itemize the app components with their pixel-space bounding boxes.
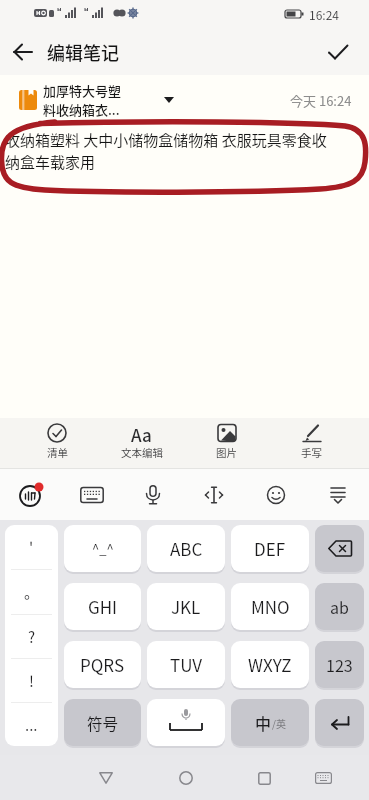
staticText: JKL	[171, 594, 201, 619]
staticText: Aa	[131, 422, 152, 444]
staticText: ab	[330, 595, 349, 618]
button[interactable]: TUV	[147, 641, 225, 688]
button[interactable]: '	[5, 525, 58, 569]
staticText: DEF	[254, 536, 286, 561]
staticText: 收纳箱塑料 大中小储物盒储物箱 衣服玩具零食收 纳盒车载家用	[5, 129, 327, 173]
button[interactable]: ABC	[147, 525, 225, 572]
button[interactable]	[0, 28, 47, 75]
button[interactable]	[315, 525, 364, 572]
button[interactable]	[147, 699, 225, 746]
staticText: 今天 16:24	[290, 91, 352, 110]
staticText: 加厚特大号塑	[43, 81, 122, 100]
staticText: MNO	[251, 594, 290, 619]
button[interactable]: 123	[315, 641, 364, 688]
button[interactable]: ...	[5, 703, 58, 746]
staticText: '	[29, 536, 34, 558]
staticText: 手写	[301, 445, 322, 460]
button[interactable]: 清单	[15, 418, 99, 468]
button[interactable]: PQRS	[64, 641, 141, 688]
button[interactable]: JKL	[147, 583, 225, 630]
button[interactable]: 加厚特大号塑	[19, 80, 352, 120]
button[interactable]: 。	[5, 570, 58, 614]
staticText: ABC	[170, 536, 203, 561]
button[interactable]	[86, 758, 126, 798]
button[interactable]	[307, 28, 369, 75]
button[interactable]: ?	[5, 615, 58, 658]
staticText: /英	[272, 716, 286, 730]
staticText: 16:24	[309, 6, 339, 23]
staticText: 清单	[47, 445, 68, 460]
button[interactable]	[315, 699, 364, 746]
button[interactable]: 中	[231, 699, 309, 746]
button[interactable]: 图片	[184, 418, 269, 468]
button[interactable]	[307, 469, 369, 520]
button[interactable]: Aa	[99, 418, 184, 468]
staticText: TUV	[170, 652, 203, 677]
staticText: 符号	[87, 712, 119, 734]
staticText: 编辑笔记	[47, 39, 119, 65]
staticText: 文本编辑	[121, 445, 163, 460]
button[interactable]: DEF	[231, 525, 309, 572]
button[interactable]	[183, 469, 245, 520]
button[interactable]: ^_^	[64, 525, 141, 572]
staticText: !	[29, 670, 34, 692]
button[interactable]: ab	[315, 583, 364, 630]
staticText: GHI	[88, 594, 118, 619]
button[interactable]: !	[5, 659, 58, 702]
button[interactable]	[245, 469, 307, 520]
staticText: WXYZ	[248, 652, 292, 677]
staticText: 图片	[216, 445, 237, 460]
button[interactable]	[244, 758, 284, 798]
button[interactable]	[166, 758, 206, 798]
button[interactable]	[303, 758, 343, 798]
staticText: ...	[25, 714, 38, 736]
button[interactable]: 符号	[64, 699, 141, 746]
staticText: ?	[28, 626, 36, 648]
staticText: 。	[24, 581, 40, 603]
button[interactable]: GHI	[64, 583, 141, 630]
staticText: PQRS	[80, 652, 125, 677]
button[interactable]: MNO	[231, 583, 309, 630]
button[interactable]: WXYZ	[231, 641, 309, 688]
button[interactable]	[122, 469, 183, 520]
staticText: 中	[255, 711, 272, 734]
button[interactable]	[61, 469, 122, 520]
button[interactable]: 手写	[269, 418, 354, 468]
button[interactable]	[0, 469, 61, 520]
staticText: ^_^	[92, 539, 114, 558]
staticText: 123	[326, 653, 353, 676]
staticText: 料收纳箱衣...	[43, 100, 120, 119]
